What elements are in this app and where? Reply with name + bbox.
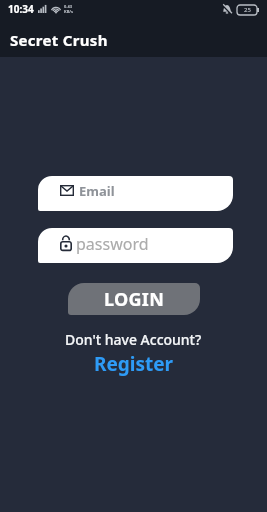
button[interactable]: LOGIN	[68, 283, 200, 315]
staticText: 10:34	[8, 2, 34, 16]
staticText: KB/s	[64, 9, 73, 14]
staticText: 25	[244, 6, 251, 14]
staticText: Secret Crush	[10, 30, 108, 50]
staticText: 0.43	[64, 4, 72, 9]
staticText: Register	[94, 351, 174, 377]
staticText: Don't have Account?	[65, 330, 202, 349]
staticText: password	[76, 233, 149, 255]
button[interactable]: password	[38, 228, 233, 263]
button[interactable]: Register	[94, 351, 174, 377]
button[interactable]: Email	[38, 176, 233, 211]
staticText: LOGIN	[104, 287, 165, 312]
staticText: Email	[79, 182, 115, 200]
